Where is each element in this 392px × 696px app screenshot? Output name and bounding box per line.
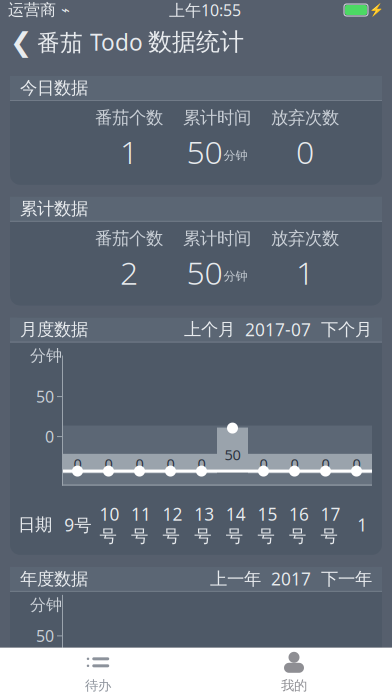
staticText: 0 (321, 454, 329, 473)
staticText: 上一年 (210, 568, 261, 589)
staticText: 上午10:55 (169, 0, 241, 21)
staticText: 放弃次数 (271, 228, 339, 249)
staticText: 0 (259, 454, 267, 473)
staticText: 分钟 (30, 346, 62, 365)
staticText: 10号 (99, 503, 119, 547)
staticText: 运营商 (8, 0, 56, 20)
staticText: 13号 (194, 503, 214, 547)
staticText: 分钟 (223, 269, 247, 284)
staticText: 日期 (18, 514, 52, 535)
staticText: 0 (45, 426, 54, 447)
staticText: 25 (36, 645, 54, 666)
button[interactable]: 下个月 (321, 319, 372, 340)
staticText: ❮ (10, 27, 32, 57)
staticText: 我的 (281, 677, 307, 694)
button[interactable]: 上个月 (184, 319, 235, 340)
staticText: 1 (296, 251, 314, 294)
staticText: 50 (224, 445, 240, 464)
staticText: 12号 (163, 503, 183, 547)
staticText: ⌁ (56, 2, 70, 18)
staticText: 数据统计 (148, 27, 244, 57)
staticText: 0 (73, 454, 81, 473)
staticText: 1 (120, 130, 138, 173)
staticText: 2017-07 (245, 318, 311, 341)
staticText: 累计数据 (20, 198, 88, 219)
staticText: 年度数据 (20, 568, 88, 589)
staticText: 番茄个数 (95, 228, 163, 249)
staticText: 上个月 (184, 319, 235, 340)
staticText: ⚡ (369, 3, 384, 17)
staticText: 50 (36, 625, 54, 646)
staticText: 累计时间 (183, 228, 251, 249)
staticText: 0 (296, 130, 314, 173)
staticText: 50 (36, 386, 54, 407)
staticText: 15号 (257, 503, 277, 547)
staticText: 下个月 (321, 319, 372, 340)
staticText: 9号 (64, 513, 91, 536)
button[interactable]: 2017-07 (245, 318, 311, 341)
button[interactable]: 下一年 (321, 568, 372, 589)
button[interactable]: 我的 (196, 647, 392, 696)
staticText: 分钟 (223, 148, 247, 163)
staticText: 累计时间 (183, 107, 251, 128)
staticText: 50 (186, 130, 222, 173)
staticText: 2017 (271, 567, 311, 590)
staticText: 1 (357, 513, 367, 536)
staticText: 0 (290, 454, 298, 473)
staticText: 今日数据 (20, 77, 88, 99)
button[interactable]: ❮ (0, 21, 143, 63)
staticText: 17号 (321, 503, 341, 547)
staticText: 16号 (289, 503, 309, 547)
button[interactable]: 上一年 (210, 568, 261, 589)
staticText: 0 (197, 454, 205, 473)
staticText: 2 (120, 251, 138, 294)
staticText: 50 (286, 684, 302, 696)
staticText: 月度数据 (20, 319, 88, 340)
staticText: 11号 (131, 503, 151, 547)
staticText: 0 (352, 454, 360, 473)
staticText: 番茄 Todo (37, 27, 143, 57)
staticText: 14号 (226, 503, 246, 547)
staticText: 50 (186, 251, 222, 294)
staticText: 待办 (85, 677, 111, 694)
staticText: 番茄个数 (95, 107, 163, 128)
staticText: 下一年 (321, 568, 372, 589)
staticText: 放弃次数 (271, 107, 339, 128)
staticText: 0 (104, 454, 112, 473)
staticText: 分钟 (30, 595, 62, 615)
staticText: 0 (135, 454, 143, 473)
button[interactable]: 待办 (0, 647, 196, 696)
staticText: 0 (166, 454, 174, 473)
button[interactable]: 2017 (271, 567, 311, 590)
